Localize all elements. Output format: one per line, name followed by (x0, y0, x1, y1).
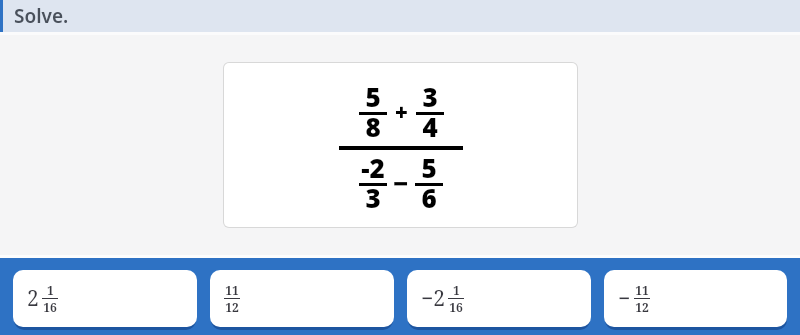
staticText: + (395, 97, 408, 127)
staticText: -2 (361, 150, 385, 185)
button[interactable]: − (604, 270, 787, 327)
button[interactable]: 2 (13, 270, 197, 327)
staticText: 2 (27, 284, 39, 313)
staticText: 3 (422, 79, 438, 114)
staticText: 1 (47, 282, 54, 298)
staticText: 6 (421, 180, 437, 215)
staticText: 16 (449, 299, 463, 315)
staticText: 5 (421, 150, 437, 185)
staticText: 1 (453, 282, 460, 298)
staticText: −2 (421, 284, 445, 313)
staticText: 12 (225, 299, 239, 315)
staticText: − (618, 284, 631, 313)
staticText: 5 (365, 79, 381, 114)
staticText: − (393, 165, 409, 200)
staticText: 4 (422, 109, 438, 144)
staticText: 8 (365, 109, 381, 144)
staticText: 11 (225, 282, 239, 298)
staticText: Solve. (14, 3, 69, 29)
button[interactable]: 11 (210, 270, 394, 327)
staticText: 3 (365, 180, 381, 215)
staticText: 12 (635, 299, 649, 315)
staticText: 16 (43, 299, 57, 315)
button[interactable]: −2 (407, 270, 591, 327)
staticText: 11 (635, 282, 649, 298)
